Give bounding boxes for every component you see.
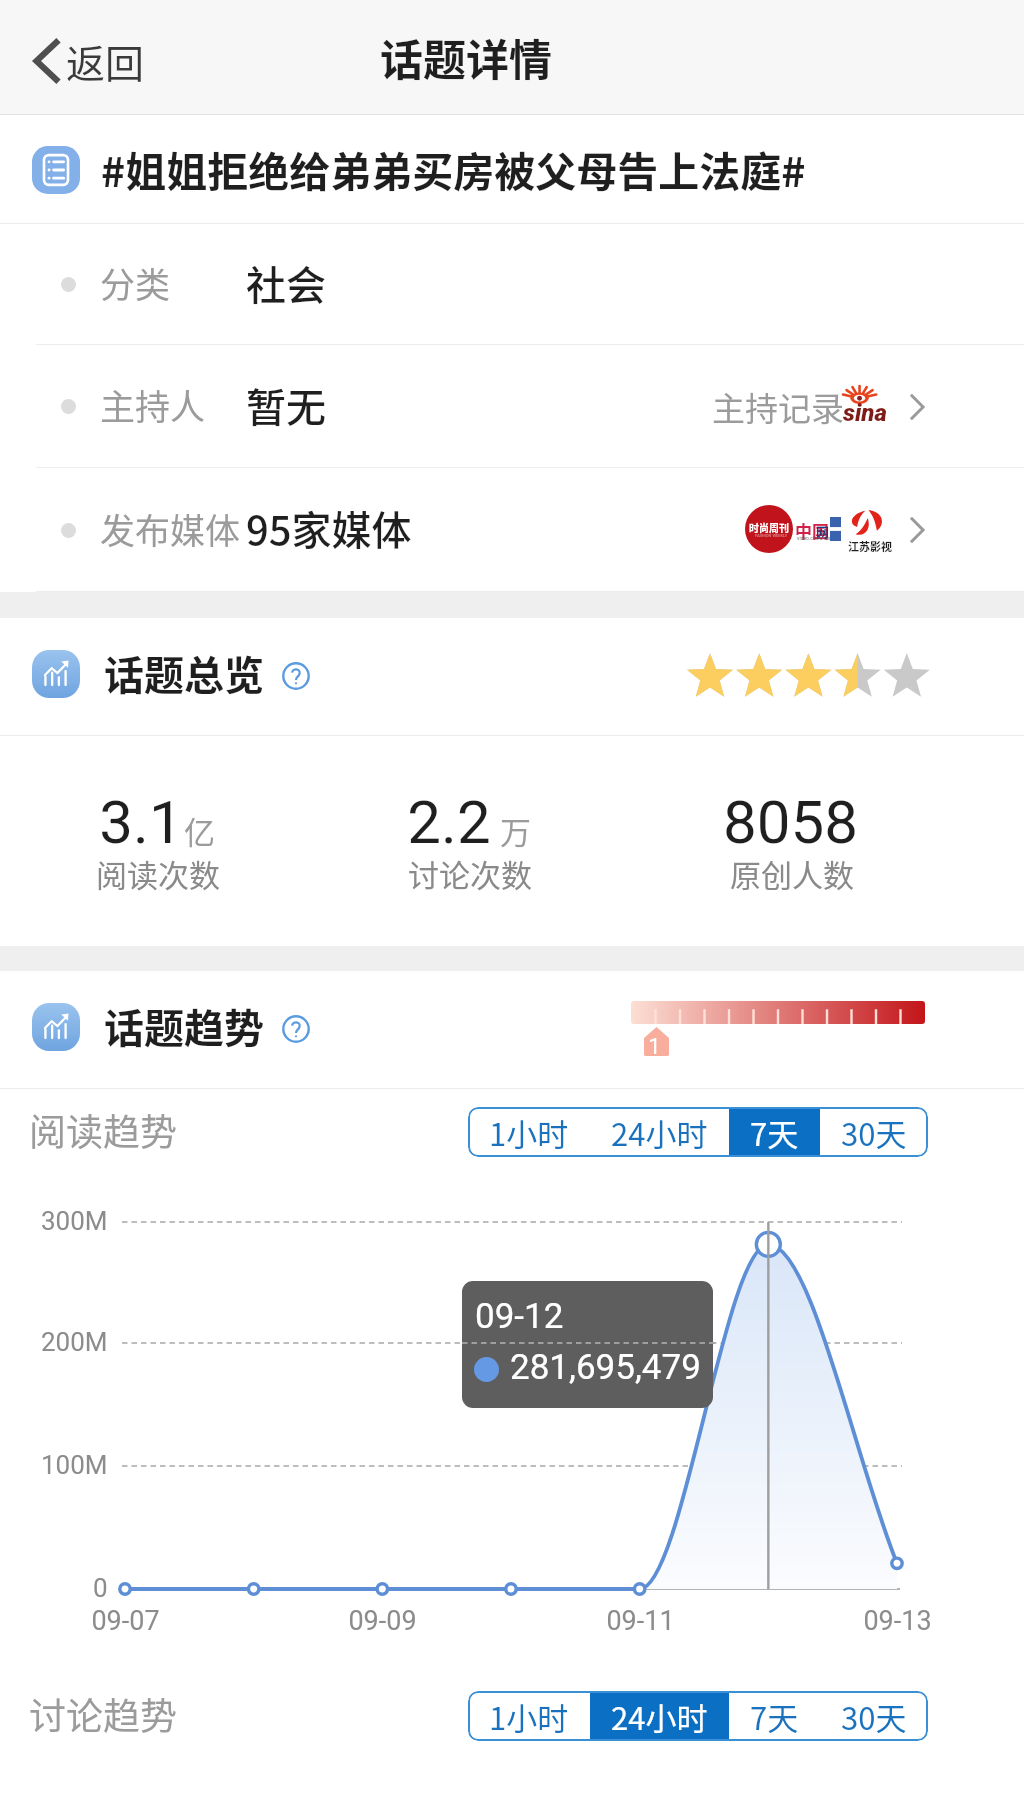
staticText: 09-09 [348,1605,417,1637]
button[interactable]: 分类 [0,224,1024,345]
staticText: 亿 [184,808,215,853]
staticText: 暂无 [246,376,326,434]
staticText: #姐姐拒绝给弟弟买房被父母告上法庭# [101,139,806,198]
staticText: 主持人 [100,379,206,430]
staticText: 返回 [66,33,145,89]
staticText: 3.1 [99,787,183,857]
staticText: 1小时 [489,1110,569,1155]
staticText: 30天 [841,1694,907,1739]
button[interactable]: 1小时 [468,1107,590,1157]
staticText: 7天 [750,1694,799,1739]
button[interactable]: 24小时 [590,1691,729,1741]
staticText: 200M [41,1327,108,1357]
staticText: 分类 [100,257,171,308]
staticText: 100M [41,1450,108,1480]
button[interactable]: 7天 [729,1107,820,1157]
staticText: 09-07 [91,1605,160,1637]
button[interactable]: #姐姐拒绝给弟弟买房被父母告上法庭# [0,115,1024,224]
button[interactable]: 30天 [820,1107,928,1157]
staticText: 中国 [795,518,829,543]
staticText: 网 [816,522,830,541]
button[interactable]: 主持人 [0,345,1024,468]
staticText: 281,695,479 [510,1347,701,1388]
staticText: 阅读趋势 [29,1103,177,1157]
staticText: 阅读次数 [96,851,220,896]
button[interactable]: 1小时 [468,1691,590,1741]
staticText: 09-12 [475,1296,564,1337]
staticText: 讨论趋势 [29,1687,177,1741]
staticText: 时尚周刊 [749,520,789,534]
staticText: 话题总览 [104,644,264,702]
staticText: 09-13 [863,1605,932,1637]
staticText: 95家媒体 [246,499,412,557]
staticText: 30天 [841,1110,907,1155]
staticText: 7天 [750,1110,799,1155]
button[interactable]: 24小时 [590,1107,729,1157]
staticText: FASHION WEEKLY [755,533,788,538]
staticText: 主持记录 [712,383,844,431]
staticText: 万 [500,808,531,853]
button[interactable]: Help [282,1015,310,1043]
button[interactable]: 30天 [820,1691,928,1741]
button[interactable]: 7天 [729,1691,820,1741]
staticText: 09-11 [606,1605,675,1637]
staticText: 1小时 [489,1694,569,1739]
staticText: 24小时 [611,1694,708,1739]
staticText: 社会 [246,254,326,312]
staticText: 江苏影视 [848,538,892,554]
staticText: 话题详情 [380,26,552,88]
staticText: sina [843,399,887,427]
staticText: 发布媒体 [100,503,241,554]
staticText: 300M [41,1206,108,1236]
staticText: video.china.com.cn [797,535,841,541]
staticText: 8058 [723,787,858,857]
staticText: 1 [648,1034,661,1060]
staticText: 原创人数 [730,851,854,896]
staticText: 话题趋势 [104,997,264,1055]
staticText: 24小时 [611,1110,708,1155]
staticText: 讨论次数 [408,851,532,896]
button[interactable]: Back [23,23,155,99]
staticText: 2.2 [407,787,491,857]
staticText: 0 [93,1573,108,1603]
button[interactable]: Help [282,662,310,690]
button[interactable]: 发布媒体 [0,468,1024,592]
